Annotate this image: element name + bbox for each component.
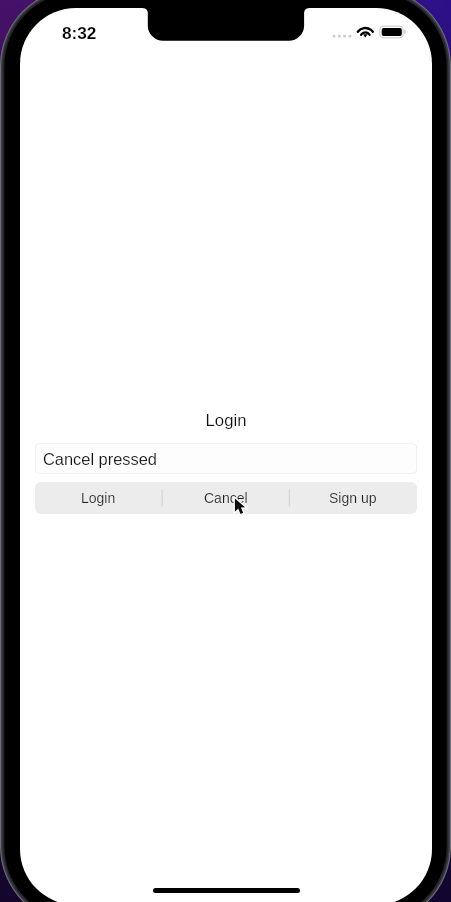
button[interactable]: Cancel: [162, 482, 289, 514]
other: Home indicator: [153, 888, 300, 893]
button[interactable]: Login: [35, 482, 162, 514]
button[interactable]: Sign up: [289, 482, 416, 514]
staticText: Cancel pressed: [43, 450, 157, 468]
button[interactable]: Cancel pressed: [35, 443, 417, 474]
staticText: Sign up: [329, 490, 377, 506]
staticText: Login: [81, 490, 116, 506]
staticText: 8:32: [62, 23, 97, 42]
staticText: Login: [20, 411, 432, 430]
staticText: Cancel: [204, 490, 248, 506]
